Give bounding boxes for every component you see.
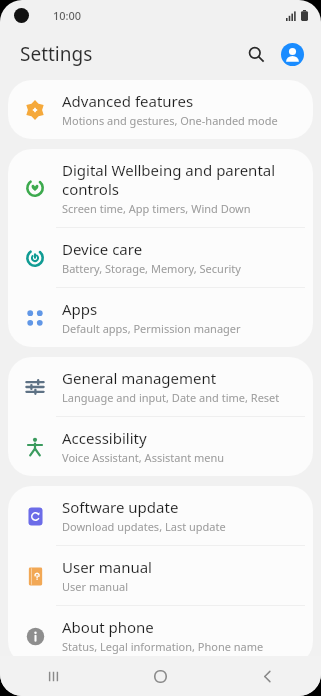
staticText: Download updates, Last update (62, 519, 226, 534)
button[interactable]: Device care (8, 228, 313, 287)
button[interactable]: User manual (8, 546, 313, 605)
button[interactable]: Apps (8, 288, 313, 347)
staticText: User manual (62, 579, 128, 594)
staticText: 10:00 (53, 8, 82, 23)
staticText: Settings (20, 41, 93, 67)
staticText: Battery, Storage, Memory, Security (62, 261, 241, 276)
button[interactable]: Digital Wellbeing and parental controls (8, 149, 313, 227)
staticText: Apps (62, 299, 98, 319)
button[interactable]: Home (107, 656, 214, 696)
staticText: Software update (62, 497, 179, 517)
staticText: User manual (62, 557, 152, 577)
button[interactable]: Advanced features (8, 80, 313, 139)
button[interactable]: Software update (8, 486, 313, 545)
staticText: Voice Assistant, Assistant menu (62, 450, 225, 465)
button[interactable]: Recents (0, 656, 107, 696)
staticText: Digital Wellbeing and parental controls (62, 160, 299, 199)
button[interactable]: General management (8, 357, 313, 416)
staticText: Device care (62, 239, 143, 259)
staticText: Motions and gestures, One-handed mode (62, 113, 278, 128)
button[interactable]: Back (214, 656, 321, 696)
staticText: About phone (62, 617, 154, 637)
staticText: Screen time, App timers, Wind Down (62, 201, 251, 216)
button[interactable]: Search (239, 37, 273, 71)
staticText: Accessibility (62, 428, 147, 448)
button[interactable]: About phone (8, 606, 313, 656)
staticText: Status, Legal information, Phone name (62, 639, 264, 654)
staticText: General management (62, 368, 217, 388)
button[interactable]: Account (275, 37, 309, 71)
button[interactable]: Accessibility (8, 417, 313, 476)
staticText: Language and input, Date and time, Reset (62, 390, 280, 405)
staticText: Advanced features (62, 91, 194, 111)
staticText: Default apps, Permission manager (62, 321, 241, 336)
